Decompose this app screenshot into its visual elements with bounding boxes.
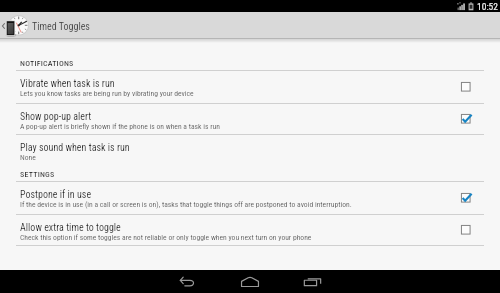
staticText: None (20, 153, 36, 162)
button[interactable]: Play sound when task is run (0, 135, 500, 166)
staticText: Allow extra time to toggle (20, 222, 121, 234)
button[interactable]: Recent apps (281, 270, 343, 293)
staticText: Check this option if some toggles are no… (20, 233, 312, 242)
button[interactable]: Home (219, 270, 281, 293)
button[interactable]: Navigate up (0, 12, 500, 39)
button[interactable]: Vibrate when task is run (0, 71, 500, 103)
staticText: Lets you know tasks are being run by vib… (20, 89, 194, 98)
button[interactable]: Show pop-up alert (0, 104, 500, 134)
staticText: Timed Toggles (32, 21, 90, 33)
staticText: Play sound when task is run (20, 142, 130, 154)
button[interactable]: Back (157, 270, 219, 293)
staticText: SETTINGS (20, 170, 55, 179)
staticText: If the device is in use (in a call or sc… (20, 200, 352, 209)
staticText: Show pop-up alert (20, 111, 92, 123)
button[interactable]: Allow extra time to toggle (0, 215, 500, 245)
button[interactable]: Postpone if in use (0, 182, 500, 214)
staticText: A pop-up alert is briefly shown if the p… (20, 122, 220, 131)
staticText: 10:52 (477, 1, 498, 12)
staticText: Vibrate when task is run (20, 78, 115, 90)
staticText: Postpone if in use (20, 189, 92, 201)
staticText: NOTIFICATIONS (20, 59, 74, 68)
